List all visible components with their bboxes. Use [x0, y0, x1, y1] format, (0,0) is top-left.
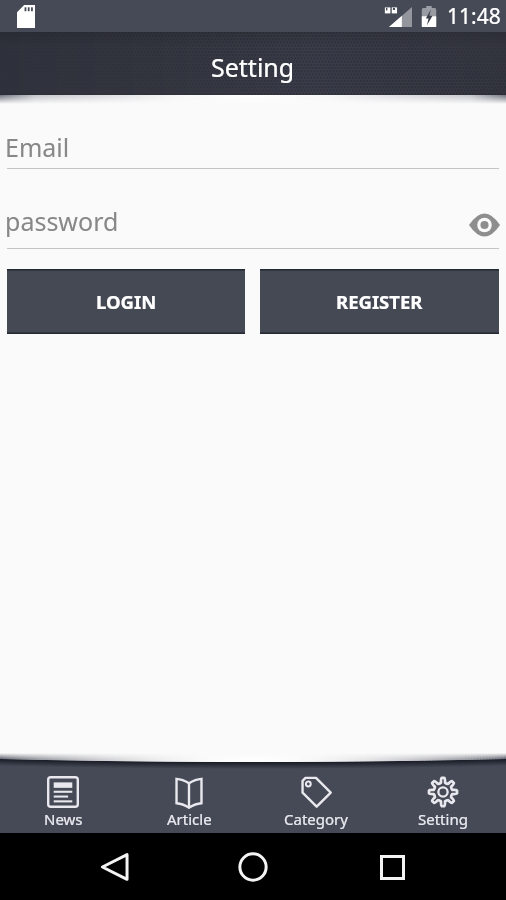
button[interactable]: Show password [464, 205, 504, 245]
button[interactable]: News [0, 753, 126, 833]
staticText: password [5, 204, 119, 238]
staticText: Setting [418, 809, 468, 829]
button[interactable]: REGISTER [260, 269, 499, 334]
staticText: REGISTER [336, 289, 423, 314]
button[interactable]: Category [252, 753, 379, 833]
button[interactable]: Home [229, 843, 277, 891]
staticText: Category [284, 809, 348, 829]
staticText: LOGIN [96, 289, 157, 314]
staticText: Setting [211, 50, 295, 84]
button[interactable]: Back [91, 843, 139, 891]
button[interactable]: Recent apps [368, 843, 416, 891]
staticText: 11:48 [447, 2, 501, 31]
staticText: News [44, 809, 83, 829]
staticText: Email [5, 130, 70, 164]
button[interactable]: Article [126, 753, 252, 833]
button[interactable]: Setting [379, 753, 506, 833]
button[interactable]: LOGIN [7, 269, 245, 334]
staticText: Article [167, 809, 212, 829]
